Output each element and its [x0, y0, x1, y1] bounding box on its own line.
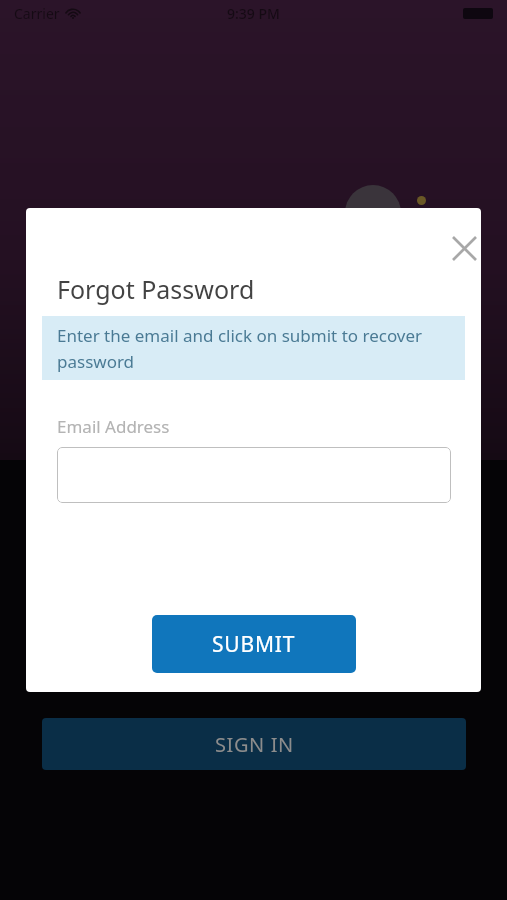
staticText: SIGN IN: [215, 731, 294, 758]
button[interactable]: Close: [435, 219, 481, 277]
staticText: Forgot Password: [57, 272, 255, 306]
staticText: 9:39 PM: [227, 4, 280, 23]
staticText: Email Address: [57, 415, 170, 438]
staticText: Enter the email and click on submit to r…: [57, 324, 455, 373]
staticText: SUBMIT: [212, 630, 296, 659]
staticText: Carrier: [14, 4, 60, 23]
button[interactable]: SUBMIT: [152, 615, 356, 673]
button[interactable]: [57, 447, 451, 503]
button[interactable]: SIGN IN: [42, 718, 466, 770]
